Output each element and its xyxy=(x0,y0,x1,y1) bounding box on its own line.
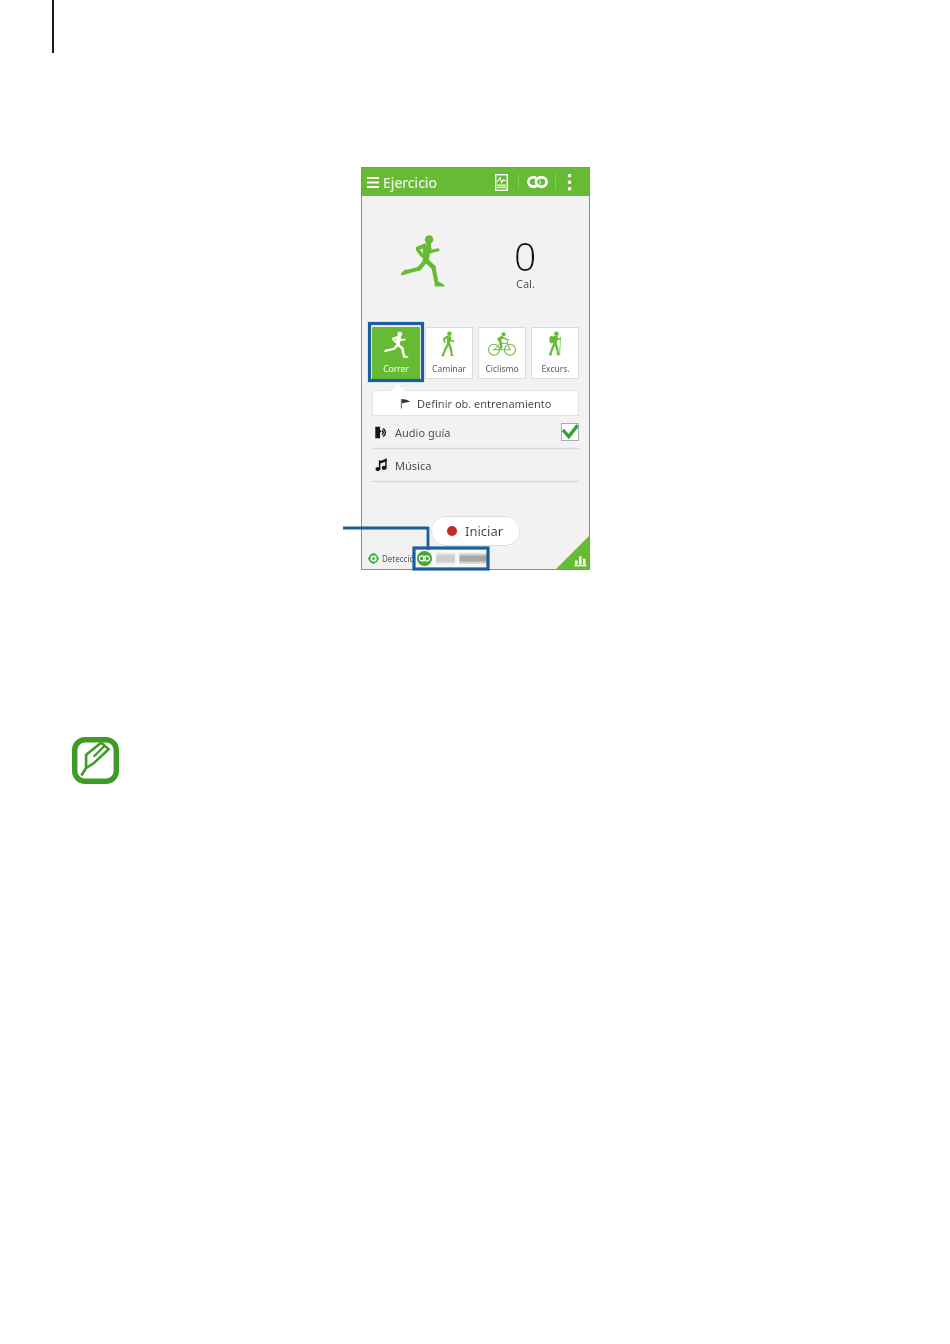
button[interactable]: Menu xyxy=(364,171,381,193)
staticText: Ejercicio xyxy=(383,173,437,192)
staticText: Ciclismo xyxy=(485,363,519,375)
staticText: 0 xyxy=(514,229,537,282)
button[interactable]: Música xyxy=(362,449,589,481)
staticText: Audio guía xyxy=(395,425,451,440)
button[interactable]: Iniciar xyxy=(431,516,520,546)
button[interactable]: Excurs. xyxy=(531,327,579,379)
button[interactable]: Audio guide enabled xyxy=(561,423,579,441)
staticText: Iniciar xyxy=(465,522,504,540)
staticText: Definir ob. entrenamiento xyxy=(417,396,552,411)
button[interactable]: More options xyxy=(562,170,576,194)
button[interactable]: Correr xyxy=(372,327,420,379)
staticText: Excurs. xyxy=(541,363,570,375)
button[interactable]: Records xyxy=(490,170,512,194)
button[interactable]: Link accessories xyxy=(525,170,549,194)
button[interactable]: Ciclismo xyxy=(478,327,526,379)
staticText: Cal. xyxy=(516,276,535,291)
staticText: Música xyxy=(395,458,432,473)
button[interactable]: Definir ob. entrenamiento xyxy=(372,390,579,416)
staticText: Detección xyxy=(382,553,420,564)
button[interactable]: Caminar xyxy=(425,327,473,379)
button[interactable]: Audio guía xyxy=(362,416,589,448)
staticText: Correr xyxy=(383,363,409,375)
staticText: Caminar xyxy=(432,363,466,375)
